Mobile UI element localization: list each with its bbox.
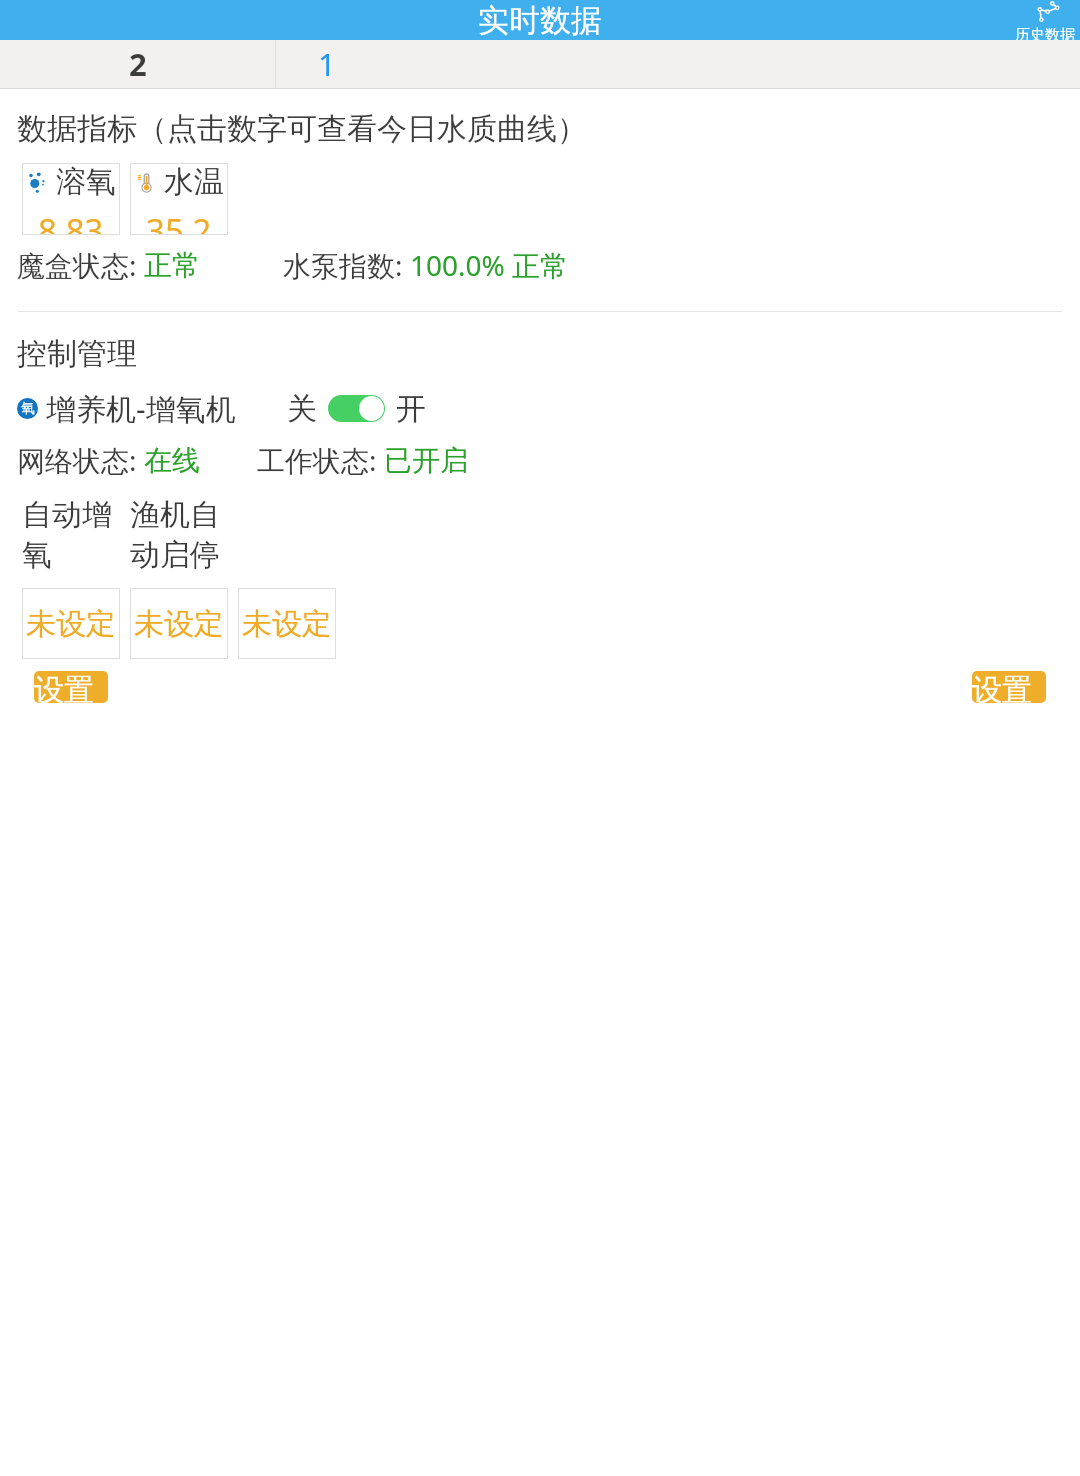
button[interactable]: 设置启停 xyxy=(972,671,1046,703)
staticText: 渔机自动启停 xyxy=(130,496,228,574)
staticText: 未设定 xyxy=(26,605,116,643)
button[interactable]: 2 xyxy=(0,40,275,88)
button[interactable]: 未设定 xyxy=(22,588,120,659)
staticText: 35.2 xyxy=(146,208,212,235)
staticText: 控制管理 xyxy=(17,335,137,373)
button[interactable]: 增氧机开关 xyxy=(328,395,385,422)
staticText: 100.0% 正常 xyxy=(410,246,569,284)
staticText: 2 xyxy=(129,43,147,85)
staticText: 8.83 xyxy=(38,208,104,235)
staticText: 水温 xyxy=(164,163,224,201)
button[interactable]: 水温 xyxy=(130,163,228,235)
staticText: 网络状态: xyxy=(17,441,144,479)
staticText: 魔盒状态: xyxy=(17,246,144,284)
staticText: 溶氧 xyxy=(56,163,116,201)
staticText: 设置增氧 xyxy=(34,671,108,703)
staticText: 在线 xyxy=(144,443,200,478)
staticText: 水泵指数: xyxy=(283,246,410,284)
staticText: 未设定 xyxy=(134,605,224,643)
button[interactable]: 溶氧 xyxy=(22,163,120,235)
staticText: 关 xyxy=(287,390,317,428)
staticText: 设置启停 xyxy=(972,671,1046,703)
staticText: 工作状态: xyxy=(257,441,384,479)
button[interactable]: 未设定 xyxy=(238,588,336,659)
staticText: 自动增氧 xyxy=(22,496,120,574)
staticText: 开 xyxy=(396,390,426,428)
button[interactable]: 设置增氧 xyxy=(34,671,108,703)
staticText: 已开启 xyxy=(384,443,468,478)
staticText: 正常 xyxy=(144,248,200,283)
button[interactable]: 1 xyxy=(276,40,1080,88)
staticText: 氧 xyxy=(21,400,35,418)
button[interactable]: 历史数据 xyxy=(1015,0,1075,40)
staticText: 增养机-增氧机 xyxy=(46,388,236,429)
staticText: 1 xyxy=(318,43,336,85)
button[interactable]: 未设定 xyxy=(130,588,228,659)
staticText: 未设定 xyxy=(242,605,332,643)
staticText: 历史数据 xyxy=(1015,26,1075,40)
staticText: 实时数据 xyxy=(478,1,602,40)
staticText: 数据指标（点击数字可查看今日水质曲线） xyxy=(17,110,587,148)
